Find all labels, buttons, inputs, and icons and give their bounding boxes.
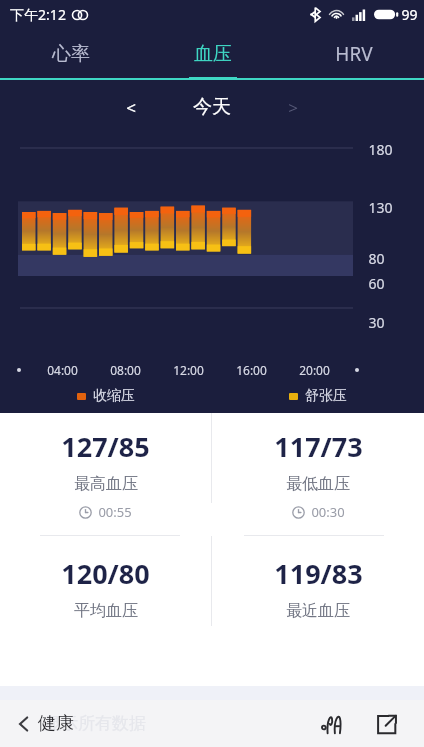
staticText: 今天 [193,95,231,119]
staticText: 127/85 [61,428,150,465]
button[interactable]: 心率 [0,28,142,80]
staticText: 16:00 [236,362,267,378]
staticText: 平均血压 [74,601,138,621]
staticText: 最近血压 [286,601,350,621]
button[interactable]: Share [366,704,406,744]
button[interactable]: 血压 [142,28,283,80]
staticText: 12:00 [173,362,204,378]
staticText: 显示所有数据 [44,713,146,734]
staticText: 收缩压 [93,387,135,405]
staticText: 20:00 [299,362,330,378]
staticText: 30 [368,313,385,332]
staticText: 下午2:12 [10,5,66,24]
button[interactable]: Previous day [111,87,151,127]
button[interactable]: 117/73 [212,413,424,535]
button[interactable]: 119/83 [212,536,424,639]
button[interactable]: Bookmarks [312,704,352,744]
staticText: 04:00 [47,362,78,378]
staticText: 130 [368,198,393,217]
staticText: < [126,96,136,119]
staticText: 120/80 [61,555,150,592]
staticText: 最高血压 [74,474,138,494]
staticText: 00:55 [98,503,132,521]
button[interactable]: 健康 [14,712,74,735]
staticText: 血压 [194,42,232,66]
staticText: 99 [401,5,418,24]
staticText: 119/83 [274,555,363,592]
staticText: 08:00 [110,362,141,378]
button[interactable]: HRV [283,28,424,80]
staticText: 180 [368,140,393,159]
staticText: > [288,96,298,119]
staticText: 00:30 [311,503,345,521]
staticText: 117/73 [274,428,363,465]
staticText: 80 [368,249,385,268]
staticText: HRV [335,41,373,67]
staticText: 健康 [38,712,74,735]
staticText: 舒张压 [305,387,347,405]
staticText: 最低血压 [286,474,350,494]
button[interactable]: 120/80 [0,536,211,639]
button[interactable]: 127/85 [0,413,211,535]
staticText: 心率 [52,42,90,66]
staticText: 60 [368,274,385,293]
button[interactable]: Next day [273,87,313,127]
